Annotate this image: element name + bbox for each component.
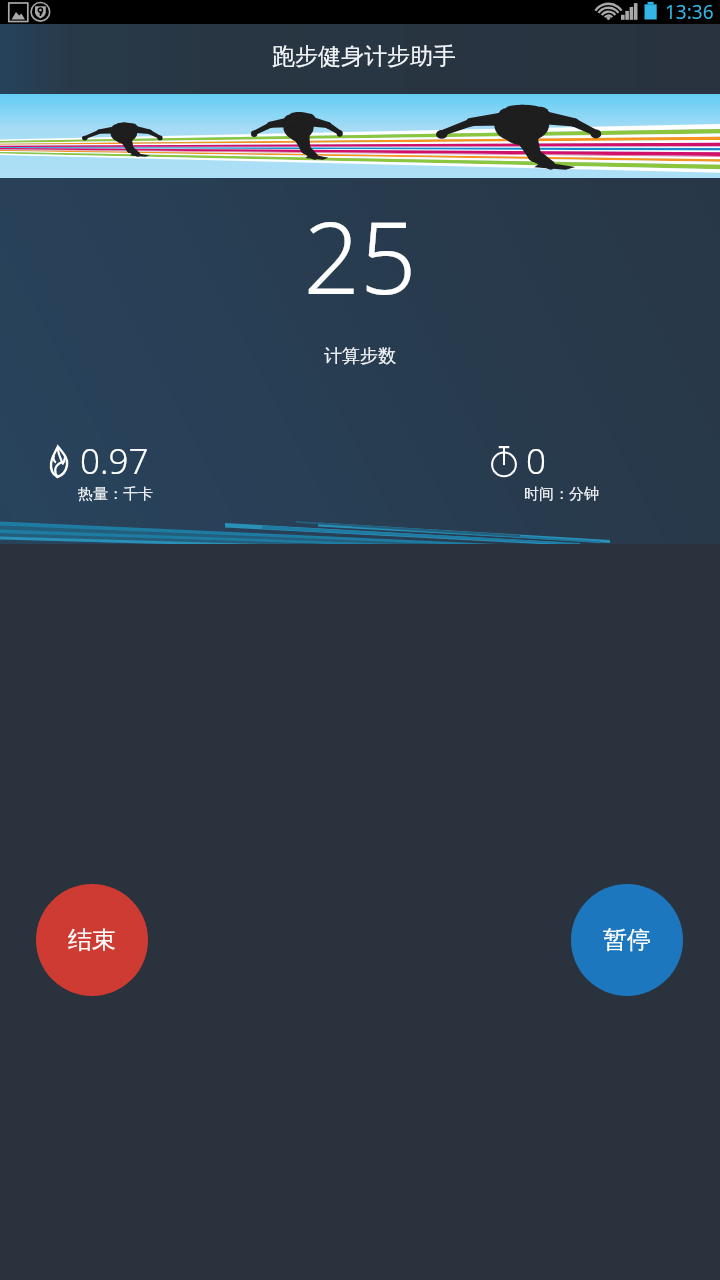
staticText: 结束 — [68, 925, 116, 955]
staticText: 热量：千卡 — [78, 485, 153, 504]
staticText: 暂停 — [603, 925, 651, 955]
staticText: 0.97 — [80, 437, 149, 485]
staticText: 0 — [526, 437, 546, 485]
button[interactable]: 结束 — [36, 884, 148, 996]
staticText: 时间：分钟 — [524, 485, 599, 504]
staticText: 跑步健身计步助手 — [272, 42, 456, 71]
staticText: 25 — [0, 188, 720, 323]
button[interactable]: 暂停 — [571, 884, 683, 996]
staticText: 计算步数 — [0, 345, 720, 368]
staticText: 13:36 — [665, 0, 714, 23]
